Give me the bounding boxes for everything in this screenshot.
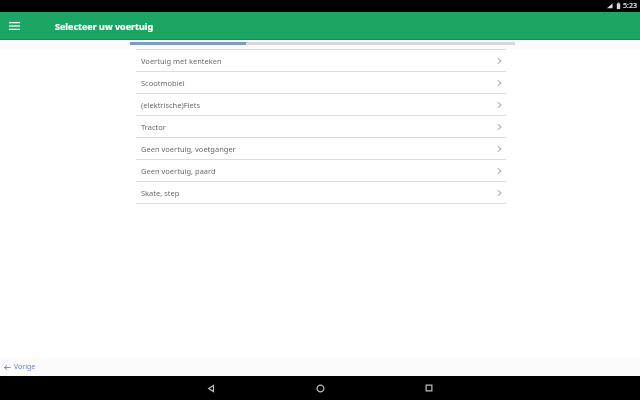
button[interactable]: (elektrische)Fiets [136, 94, 506, 115]
button[interactable]: Tractor [136, 116, 506, 137]
button[interactable]: Menu [4, 16, 24, 36]
staticText: 5:23 [623, 1, 637, 11]
button[interactable]: Back [200, 377, 222, 399]
staticText: Tractor [141, 122, 166, 132]
staticText: Skate, step [141, 188, 180, 198]
button[interactable]: Voertuig met kenteken [136, 50, 506, 71]
staticText: Scootmobiel [141, 78, 185, 88]
staticText: Voertuig met kenteken [141, 56, 222, 66]
button[interactable]: Recent apps [418, 377, 440, 399]
button[interactable]: Home [309, 377, 331, 399]
staticText: (elektrische)Fiets [141, 100, 201, 110]
button[interactable]: Skate, step [136, 182, 506, 203]
button[interactable]: Scootmobiel [136, 72, 506, 93]
button[interactable]: Vorige [4, 362, 36, 372]
button[interactable]: Geen voertuig, voetganger [136, 138, 506, 159]
staticText: Selecteer uw voertuig [55, 20, 154, 32]
staticText: Geen voertuig, paard [141, 166, 216, 176]
button[interactable]: Geen voertuig, paard [136, 160, 506, 181]
staticText: Geen voertuig, voetganger [141, 144, 236, 154]
staticText: Vorige [14, 362, 36, 372]
